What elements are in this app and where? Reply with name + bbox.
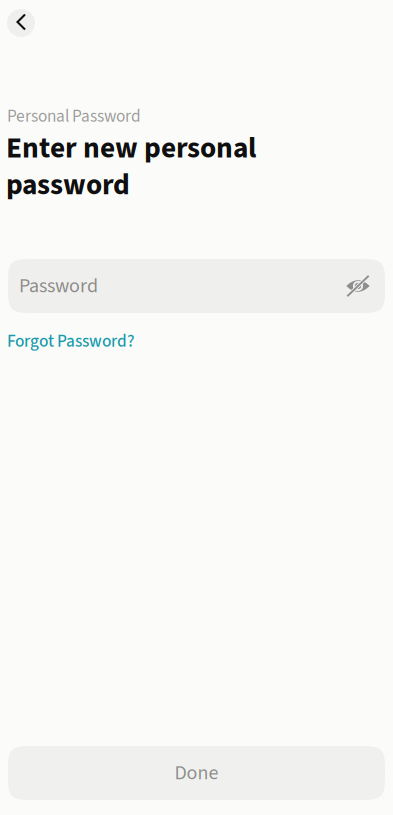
button[interactable]: Password — [8, 259, 339, 313]
button[interactable]: Done — [8, 746, 385, 800]
button[interactable]: Back — [7, 9, 35, 37]
button[interactable]: Forgot Password? — [7, 329, 135, 354]
staticText: Forgot Password? — [7, 329, 135, 354]
staticText: Personal Password — [7, 104, 141, 129]
staticText: Enter new personal password — [6, 130, 256, 203]
button[interactable]: Show password — [339, 267, 377, 305]
staticText: Done — [174, 759, 218, 787]
staticText: Password — [19, 272, 98, 300]
